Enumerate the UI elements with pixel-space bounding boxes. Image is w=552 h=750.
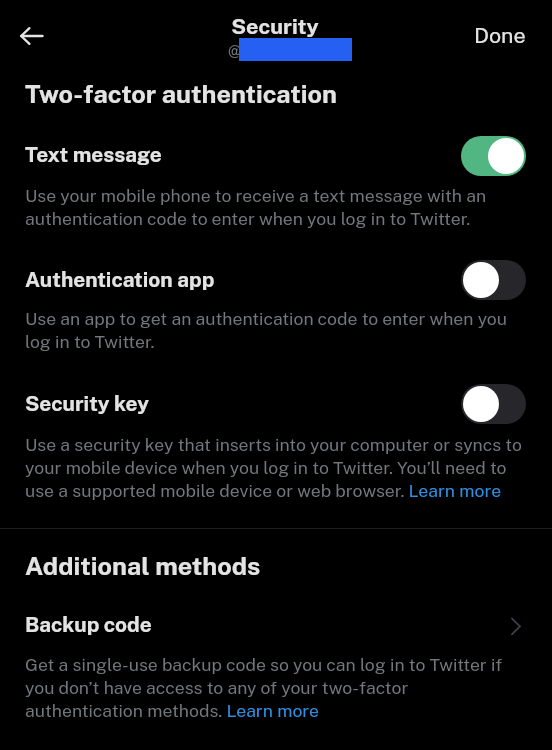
staticText: Text message [25,142,405,166]
staticText: Security key [25,391,405,415]
other: Backup code [508,615,526,639]
staticText: @ [228,41,242,60]
staticText: Two-factor authentication [25,79,528,109]
button[interactable]: Back [8,12,56,60]
button[interactable]: Text message [461,136,526,176]
staticText: Use your mobile phone to receive a text … [25,184,528,230]
staticText: Security [0,14,551,39]
staticText: Backup code [25,612,405,636]
staticText: Additional methods [25,551,528,581]
button[interactable] [0,608,552,644]
button[interactable]: Done [462,11,538,59]
button[interactable]: Authentication app [461,260,526,300]
button[interactable]: Security key [461,384,526,424]
staticText: Done [474,23,526,48]
staticText: Get a single-use backup code so you can … [25,653,528,722]
staticText: Use an app to get an authentication code… [25,307,528,353]
staticText: Use a security key that inserts into you… [25,433,528,502]
staticText: Authentication app [25,267,405,291]
